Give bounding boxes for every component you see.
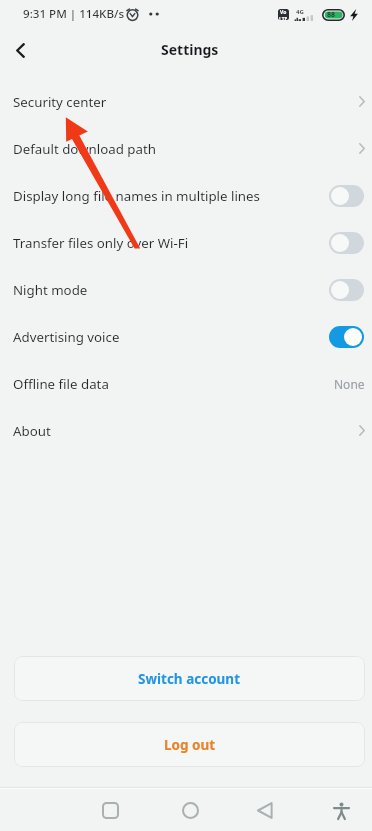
staticText: Security center xyxy=(13,93,359,111)
staticText: Advertising voice xyxy=(13,328,329,346)
staticText: Settings xyxy=(161,40,219,59)
button[interactable]: Offline file data xyxy=(0,360,372,407)
button[interactable]: About xyxy=(0,407,372,454)
button[interactable]: Back xyxy=(0,29,42,71)
button[interactable]: Back xyxy=(244,789,286,831)
button[interactable]: Home xyxy=(169,789,211,831)
staticText: About xyxy=(13,422,359,440)
staticText: Default download path xyxy=(13,140,359,158)
button[interactable]: Recent apps xyxy=(89,789,131,831)
staticText: 88 xyxy=(327,10,336,20)
staticText: Night mode xyxy=(13,281,329,299)
button[interactable]: Advertising voice xyxy=(0,313,372,360)
staticText: None xyxy=(334,376,365,392)
button[interactable]: Display long file names in multiple line… xyxy=(0,172,372,219)
button[interactable]: Night mode xyxy=(0,266,372,313)
button[interactable]: Accessibility xyxy=(320,789,362,831)
staticText: Vo xyxy=(280,9,287,16)
staticText: Switch account xyxy=(138,670,241,688)
button[interactable]: Off xyxy=(329,232,364,254)
staticText: Display long file names in multiple line… xyxy=(13,187,329,205)
staticText: Offline file data xyxy=(13,375,334,393)
staticText: 4G xyxy=(296,8,304,16)
button[interactable]: Log out xyxy=(14,722,365,767)
button[interactable]: Security center xyxy=(0,78,372,125)
button[interactable]: Off xyxy=(329,279,364,301)
staticText: Log out xyxy=(164,736,216,754)
button[interactable]: On xyxy=(329,326,364,348)
staticText: 9:31 PM | 114KB/s xyxy=(23,6,125,22)
staticText: Transfer files only over Wi-Fi xyxy=(13,234,329,252)
staticText: LTE xyxy=(279,16,288,20)
button[interactable]: Transfer files only over Wi-Fi xyxy=(0,219,372,266)
button[interactable]: Default download path xyxy=(0,125,372,172)
button[interactable]: Switch account xyxy=(14,656,365,701)
button[interactable]: Off xyxy=(329,185,364,207)
